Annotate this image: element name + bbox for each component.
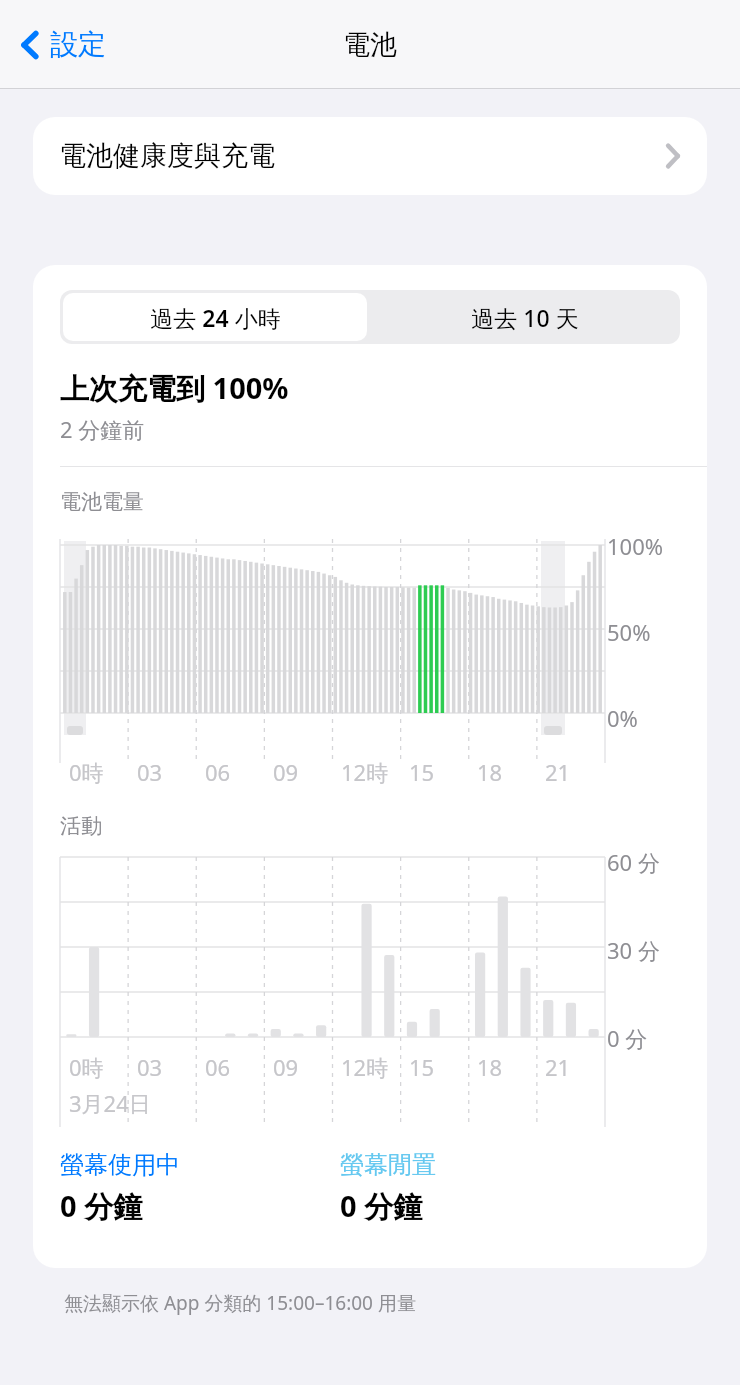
button[interactable]: 設定 (14, 21, 112, 68)
staticText: 21 (545, 757, 571, 787)
staticText: 過去 24 小時 (150, 302, 281, 333)
staticText: 100% (607, 531, 664, 561)
staticText: 30 分 (607, 935, 660, 965)
staticText: 60 分 (607, 847, 660, 877)
staticText: 09 (273, 757, 299, 787)
staticText: 無法顯示依 App 分類的 15:00–16:00 用量 (64, 1290, 740, 1316)
staticText: 螢幕閒置 (340, 1150, 436, 1180)
staticText: 50% (607, 617, 651, 647)
staticText: 設定 (50, 27, 106, 62)
staticText: 電池健康度與充電 (59, 139, 275, 173)
staticText: 18 (477, 757, 503, 787)
staticText: 3月24日 (69, 1088, 151, 1118)
staticText: 0時 (69, 757, 104, 787)
button[interactable]: 電池健康度與充電 (33, 117, 707, 195)
staticText: 21 (545, 1052, 571, 1082)
staticText: 上次充電到 100% (60, 368, 289, 408)
staticText: 03 (137, 1052, 163, 1082)
staticText: 0% (607, 703, 638, 733)
staticText: 06 (205, 757, 231, 787)
button[interactable]: 過去 24 小時 (63, 293, 367, 341)
staticText: 06 (205, 1052, 231, 1082)
staticText: 0 分 (607, 1023, 648, 1053)
staticText: 0時 (69, 1052, 104, 1082)
staticText: 12時 (341, 757, 389, 787)
staticText: 03 (137, 757, 163, 787)
staticText: 活動 (60, 813, 102, 839)
staticText: 0 分鐘 (60, 1186, 143, 1226)
staticText: 15 (409, 1052, 435, 1082)
staticText: 螢幕使用中 (60, 1150, 180, 1180)
staticText: 電池 (343, 28, 397, 62)
staticText: 18 (477, 1052, 503, 1082)
staticText: 電池電量 (60, 489, 144, 515)
staticText: 0 分鐘 (340, 1186, 423, 1226)
staticText: 09 (273, 1052, 299, 1082)
staticText: 過去 10 天 (471, 302, 579, 333)
staticText: 12時 (341, 1052, 389, 1082)
staticText: 15 (409, 757, 435, 787)
staticText: 2 分鐘前 (60, 414, 145, 444)
button[interactable]: 過去 10 天 (370, 290, 680, 344)
